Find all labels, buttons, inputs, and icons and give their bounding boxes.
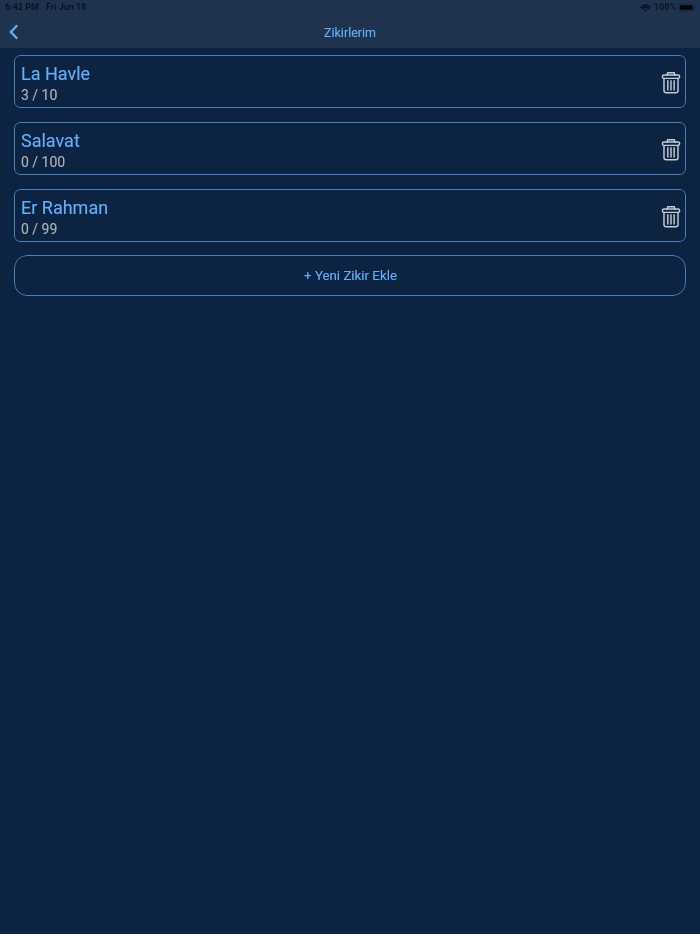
button[interactable]: La Havle	[14, 55, 686, 108]
staticText: Er Rahman	[21, 197, 109, 218]
button[interactable]: Delete	[656, 134, 686, 164]
button[interactable]: + Yeni Zikir Ekle	[14, 255, 686, 296]
staticText: Fri Jun 18	[46, 2, 87, 13]
staticText: 3 / 10	[21, 87, 58, 103]
button[interactable]: Er Rahman	[14, 189, 686, 242]
button[interactable]: Back	[0, 18, 28, 46]
button[interactable]: Delete	[656, 67, 686, 97]
button[interactable]: Delete	[656, 201, 686, 231]
staticText: Zikirlerim	[324, 25, 377, 40]
staticText: 6:42 PM	[5, 2, 39, 13]
staticText: 0 / 99	[21, 221, 58, 237]
button[interactable]: Salavat	[14, 122, 686, 175]
staticText: + Yeni Zikir Ekle	[304, 268, 397, 284]
staticText: 0 / 100	[21, 154, 66, 170]
staticText: 100%	[654, 2, 677, 13]
staticText: Salavat	[21, 130, 80, 151]
staticText: La Havle	[21, 63, 91, 84]
